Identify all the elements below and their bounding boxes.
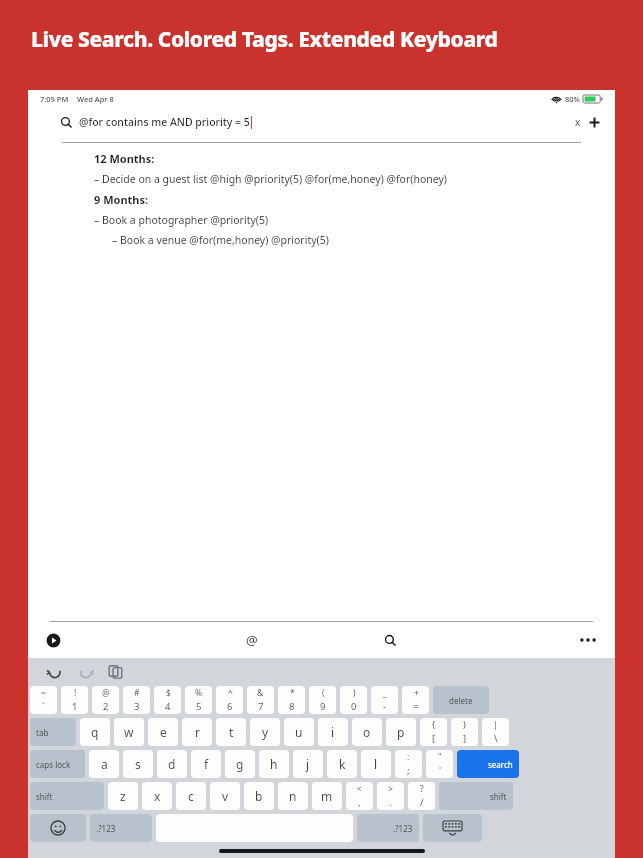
button[interactable]: Redo xyxy=(75,661,96,682)
button[interactable]: g xyxy=(225,750,255,778)
staticText: y xyxy=(262,724,269,740)
button[interactable]: b xyxy=(244,782,274,810)
button[interactable]: ~ xyxy=(30,686,57,714)
button[interactable]: : xyxy=(395,750,422,778)
staticText: 7 xyxy=(258,700,264,713)
staticText: 8 xyxy=(289,700,295,713)
staticText: 2 xyxy=(103,700,109,713)
button[interactable]: < xyxy=(346,782,373,810)
staticText: i xyxy=(331,724,335,740)
button[interactable]: k xyxy=(327,750,357,778)
button[interactable]: @ xyxy=(92,686,119,714)
button[interactable]: # xyxy=(123,686,150,714)
staticText: 80% xyxy=(565,94,580,104)
staticText: – Decide on a guest list @high @priority… xyxy=(94,172,447,186)
button[interactable]: ! xyxy=(61,686,88,714)
staticText: " xyxy=(438,751,442,763)
staticText: ' xyxy=(439,764,442,777)
staticText: ^ xyxy=(228,687,233,699)
button[interactable]: s xyxy=(123,750,153,778)
staticText: : xyxy=(407,751,410,763)
staticText: | xyxy=(493,719,498,731)
button[interactable]: & xyxy=(247,686,274,714)
staticText: shift xyxy=(36,791,53,802)
button[interactable]: | xyxy=(482,718,509,746)
button[interactable]: o xyxy=(352,718,382,746)
button[interactable]: .?123 xyxy=(90,814,152,842)
staticText: 5 xyxy=(196,700,202,713)
staticText: b xyxy=(255,788,263,804)
button[interactable]: y xyxy=(250,718,280,746)
button[interactable]: % xyxy=(185,686,212,714)
button[interactable]: f xyxy=(191,750,221,778)
staticText: 6 xyxy=(227,700,233,713)
button[interactable]: a xyxy=(89,750,119,778)
button[interactable]: .?123 xyxy=(357,814,419,842)
button[interactable]: ^ xyxy=(216,686,243,714)
button[interactable]: n xyxy=(278,782,308,810)
button[interactable]: v xyxy=(210,782,240,810)
button[interactable]: ) xyxy=(340,686,367,714)
button[interactable]: Add xyxy=(586,114,603,131)
button[interactable]: ? xyxy=(408,782,435,810)
button[interactable]: l xyxy=(361,750,391,778)
button[interactable]: m xyxy=(312,782,342,810)
staticText: & xyxy=(257,687,264,699)
button[interactable]: > xyxy=(377,782,404,810)
button[interactable]: search xyxy=(457,750,519,778)
button[interactable]: + xyxy=(402,686,429,714)
staticText: x xyxy=(575,115,581,129)
button[interactable]: i xyxy=(318,718,348,746)
button[interactable]: p xyxy=(386,718,416,746)
button[interactable]: h xyxy=(259,750,289,778)
button[interactable]: Emoji xyxy=(30,814,86,842)
button[interactable]: More options xyxy=(459,622,597,658)
staticText: l xyxy=(374,756,378,772)
staticText: 9 Months: xyxy=(94,192,149,207)
button[interactable]: Hide keyboard xyxy=(423,814,482,842)
button[interactable]: shift xyxy=(30,782,104,810)
staticText: } xyxy=(463,719,467,731)
staticText: caps lock xyxy=(36,759,71,770)
button[interactable]: ( xyxy=(309,686,336,714)
button[interactable]: t xyxy=(216,718,246,746)
staticText: d xyxy=(168,756,176,772)
button[interactable]: j xyxy=(293,750,323,778)
button[interactable]: delete xyxy=(433,686,489,714)
staticText: r xyxy=(195,724,200,740)
button[interactable]: u xyxy=(284,718,314,746)
button[interactable]: shift xyxy=(439,782,513,810)
button[interactable]: } xyxy=(451,718,478,746)
button[interactable]: Play xyxy=(46,622,183,658)
staticText: = xyxy=(413,700,419,713)
button[interactable]: Search xyxy=(321,622,459,658)
button[interactable]: Undo xyxy=(44,661,65,682)
button[interactable]: e xyxy=(148,718,178,746)
staticText: q xyxy=(91,724,99,740)
button[interactable]: c xyxy=(176,782,206,810)
button[interactable]: q xyxy=(80,718,110,746)
staticText: .?123 xyxy=(393,823,413,834)
staticText: 3 xyxy=(134,700,140,713)
staticText: – Book a photographer @priority(5) xyxy=(94,213,269,227)
button[interactable]: Tags xyxy=(183,622,321,658)
button[interactable]: w xyxy=(114,718,144,746)
button[interactable]: * xyxy=(278,686,305,714)
button[interactable]: Paste xyxy=(106,662,125,681)
button[interactable]: x xyxy=(142,782,172,810)
button[interactable]: " xyxy=(426,750,453,778)
button[interactable]: d xyxy=(157,750,187,778)
button[interactable]: $ xyxy=(154,686,181,714)
button[interactable]: _ xyxy=(371,686,398,714)
button[interactable]: tab xyxy=(30,718,76,746)
button[interactable]: { xyxy=(420,718,447,746)
staticText: ] xyxy=(463,732,467,745)
button[interactable]: r xyxy=(182,718,212,746)
button[interactable]: caps lock xyxy=(30,750,85,778)
staticText: v xyxy=(222,788,229,804)
button[interactable]: Clear xyxy=(572,112,584,132)
staticText: x xyxy=(154,788,161,804)
button[interactable]: z xyxy=(108,782,138,810)
staticText: c xyxy=(188,788,194,804)
